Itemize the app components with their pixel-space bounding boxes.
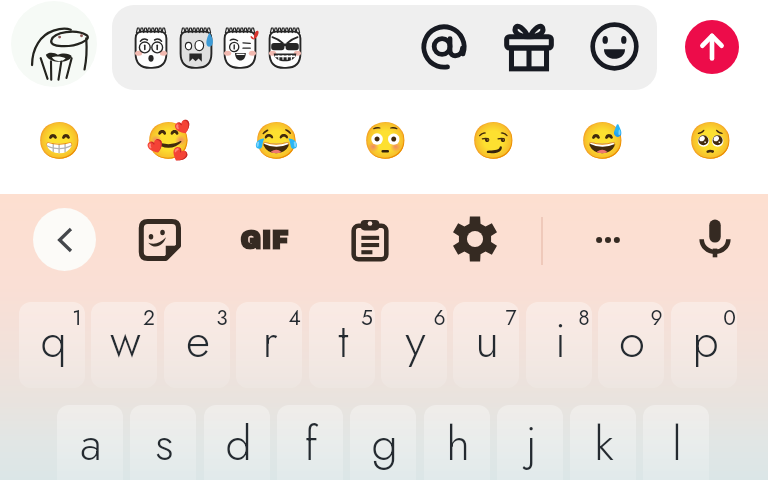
button[interactable]: 😳 xyxy=(359,115,411,167)
staticText: 8 xyxy=(578,303,590,331)
button[interactable]: k xyxy=(570,405,636,480)
button[interactable]: 🥰 xyxy=(142,115,194,167)
button[interactable]: Sticker suggestion xyxy=(220,22,260,70)
button[interactable]: i xyxy=(526,302,592,388)
staticText: 😳 xyxy=(363,120,408,162)
staticText: y xyxy=(405,307,426,375)
button[interactable]: 🥺 xyxy=(684,115,736,167)
button[interactable]: GIF xyxy=(234,216,294,264)
staticText: e xyxy=(186,307,210,375)
staticText: i xyxy=(555,307,566,375)
staticText: 2 xyxy=(143,303,155,331)
staticText: 😂 xyxy=(254,120,299,162)
button[interactable]: l xyxy=(643,405,709,480)
button[interactable]: More options xyxy=(584,216,632,264)
button[interactable]: s xyxy=(130,405,196,480)
button[interactable]: Send xyxy=(685,20,739,74)
staticText: d xyxy=(225,410,252,478)
button[interactable]: Gift xyxy=(505,23,553,71)
staticText: a xyxy=(80,410,102,478)
button[interactable]: 😏 xyxy=(467,115,519,167)
staticText: s xyxy=(155,410,174,478)
button[interactable]: 😁 xyxy=(33,115,85,167)
button[interactable]: Settings xyxy=(452,216,498,262)
staticText: 😁 xyxy=(37,120,82,162)
button[interactable]: f xyxy=(277,405,343,480)
button[interactable]: w xyxy=(91,302,157,388)
button[interactable]: Voice input xyxy=(692,215,738,261)
button[interactable]: 😂 xyxy=(250,115,302,167)
staticText: 😅 xyxy=(580,120,625,162)
button[interactable]: Clipboard xyxy=(346,216,394,264)
button[interactable]: Stickers xyxy=(136,216,184,264)
button[interactable]: Sticker suggestion xyxy=(176,22,216,70)
staticText: r xyxy=(262,307,278,375)
staticText: j xyxy=(526,410,537,478)
staticText: 🥰 xyxy=(146,120,191,162)
staticText: 6 xyxy=(433,303,446,331)
button[interactable]: Mention xyxy=(420,23,468,71)
button[interactable]: g xyxy=(350,405,416,480)
staticText: w xyxy=(110,307,141,375)
staticText: 4 xyxy=(288,303,301,331)
staticText: l xyxy=(672,410,682,478)
button[interactable]: p xyxy=(671,302,737,388)
staticText: 5 xyxy=(361,303,373,331)
staticText: o xyxy=(619,307,645,375)
button[interactable]: t xyxy=(309,302,375,388)
staticText: p xyxy=(692,307,719,375)
staticText: 3 xyxy=(216,303,228,331)
button[interactable]: y xyxy=(381,302,447,388)
button[interactable]: Back xyxy=(33,208,96,271)
staticText: 0 xyxy=(723,303,736,331)
staticText: f xyxy=(304,410,318,478)
button[interactable]: 😅 xyxy=(576,115,628,167)
staticText: q xyxy=(40,307,67,375)
button[interactable]: Avatar sticker xyxy=(11,1,97,87)
staticText: 7 xyxy=(505,303,517,331)
button[interactable]: d xyxy=(204,405,270,480)
button[interactable]: q xyxy=(19,302,85,388)
button[interactable]: u xyxy=(453,302,519,388)
staticText: k xyxy=(594,410,614,478)
staticText: 😏 xyxy=(471,120,516,162)
staticText: t xyxy=(338,307,349,375)
button[interactable]: o xyxy=(598,302,664,388)
staticText: 1 xyxy=(72,303,82,331)
staticText: GIF xyxy=(240,227,289,254)
button[interactable]: r xyxy=(236,302,302,388)
button[interactable]: j xyxy=(497,405,563,480)
button[interactable]: a xyxy=(57,405,123,480)
staticText: g xyxy=(371,410,398,478)
staticText: 9 xyxy=(650,303,663,331)
staticText: h xyxy=(446,410,470,478)
button[interactable]: h xyxy=(424,405,490,480)
staticText: 🥺 xyxy=(688,120,733,162)
button[interactable]: e xyxy=(164,302,230,388)
button[interactable]: Sticker suggestion xyxy=(131,22,171,70)
staticText: u xyxy=(475,307,499,375)
button[interactable]: Sticker suggestion xyxy=(265,22,305,70)
button[interactable]: Emoji xyxy=(590,22,639,71)
